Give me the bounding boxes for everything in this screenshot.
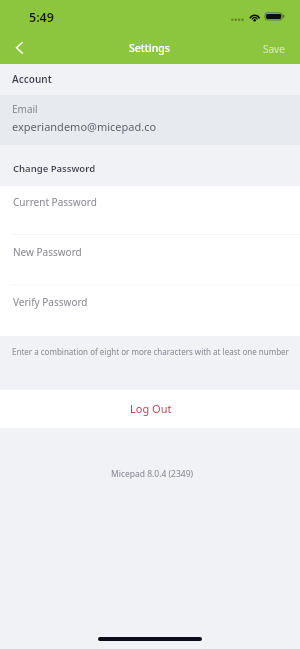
staticText: experiandemo@micepad.co [12, 119, 157, 134]
button[interactable] [0, 235, 300, 285]
staticText: Verify Password [13, 295, 88, 309]
staticText: Account [12, 72, 52, 86]
button[interactable]: Save [254, 34, 294, 61]
staticText: Settings [129, 41, 170, 55]
staticText: Log Out [130, 401, 172, 416]
staticText: Email [12, 102, 38, 116]
button[interactable]: Log Out [0, 390, 300, 428]
button[interactable] [0, 285, 300, 336]
staticText: Enter a combination of eight or more cha… [12, 346, 289, 357]
staticText: Change Password [13, 162, 96, 175]
staticText: Save [263, 42, 285, 56]
button[interactable] [0, 95, 300, 145]
button[interactable] [0, 186, 300, 235]
staticText: 5:49 [29, 9, 54, 26]
staticText: New Password [13, 245, 82, 259]
staticText: Micepad 8.0.4 (2349) [111, 468, 194, 480]
button[interactable]: Back [3, 32, 35, 64]
staticText: Current Password [13, 195, 97, 209]
